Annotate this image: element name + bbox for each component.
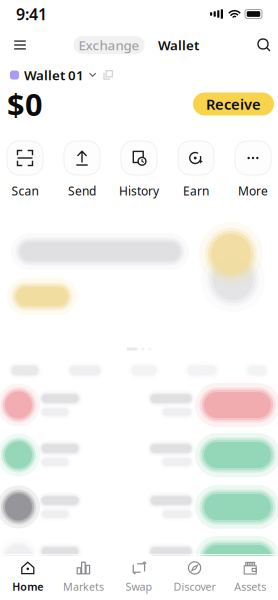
button[interactable]: Wallet 01 <box>10 64 96 86</box>
staticText: Markets <box>63 580 104 594</box>
staticText: More <box>238 183 268 199</box>
button[interactable]: Home <box>0 561 56 594</box>
staticText: Assets <box>234 580 266 594</box>
staticText: $0 <box>7 84 43 124</box>
staticText: Earn <box>183 183 209 199</box>
button[interactable]: Markets <box>56 561 111 594</box>
staticText: Scan <box>11 183 38 199</box>
button[interactable]: Wallet <box>144 36 212 54</box>
button[interactable]: Earn <box>176 141 216 199</box>
button[interactable]: Scan <box>5 141 45 199</box>
staticText: Discover <box>174 580 216 594</box>
staticText: History <box>119 183 159 199</box>
button[interactable]: Receive <box>193 92 274 115</box>
button[interactable]: Search <box>254 33 274 57</box>
button[interactable]: Copy address <box>96 64 120 86</box>
button[interactable] <box>0 380 278 430</box>
button[interactable]: More <box>233 141 273 199</box>
staticText: 9:41 <box>16 3 47 25</box>
button[interactable]: Swap <box>111 561 167 594</box>
button[interactable]: Menu <box>8 33 32 57</box>
button[interactable] <box>0 533 278 583</box>
staticText: Exchange <box>78 36 139 54</box>
button[interactable]: Assets <box>222 561 278 594</box>
button[interactable] <box>0 430 278 480</box>
button[interactable] <box>0 232 278 332</box>
staticText: Wallet <box>158 36 199 54</box>
button[interactable]: History <box>119 141 159 199</box>
staticText: Swap <box>125 580 152 594</box>
button[interactable]: Exchange <box>73 36 144 54</box>
staticText: Send <box>68 183 96 199</box>
staticText: Home <box>12 580 43 594</box>
button[interactable]: Send <box>62 141 102 199</box>
button[interactable]: Discover <box>167 561 222 594</box>
button[interactable] <box>0 482 278 532</box>
staticText: Receive <box>206 94 261 114</box>
staticText: Wallet 01 <box>24 66 84 84</box>
